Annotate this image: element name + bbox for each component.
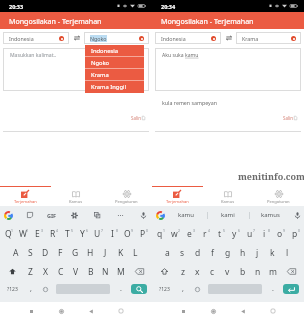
button[interactable]: X <box>38 262 53 281</box>
button[interactable]: . <box>113 281 128 297</box>
button[interactable]: Kamus <box>202 187 253 206</box>
button[interactable]: Krama Inggil <box>85 81 144 93</box>
button[interactable]: D <box>38 243 53 262</box>
button[interactable]: m <box>265 262 280 281</box>
button[interactable]: Clear <box>211 36 216 41</box>
button[interactable]: Emoji <box>38 281 53 297</box>
button[interactable]: Clear <box>139 36 144 41</box>
button[interactable]: Masukkan kalimat.. <box>3 48 149 91</box>
button[interactable]: n <box>250 262 265 281</box>
button[interactable]: J <box>98 243 113 262</box>
button[interactable]: . <box>265 281 280 297</box>
button[interactable]: S <box>23 243 38 262</box>
button[interactable]: kamus <box>249 206 291 224</box>
button[interactable]: z <box>175 262 190 281</box>
button[interactable]: y <box>227 224 242 243</box>
button[interactable]: Aku suka <box>155 48 301 91</box>
button[interactable]: V <box>68 262 83 281</box>
button[interactable]: u <box>242 224 257 243</box>
button[interactable]: U <box>90 224 105 243</box>
button[interactable]: O <box>120 224 135 243</box>
button[interactable]: Emoji <box>190 281 205 297</box>
button[interactable]: o <box>272 224 287 243</box>
button[interactable]: Indonesia <box>155 32 221 44</box>
button[interactable]: Krama <box>85 69 144 81</box>
button[interactable]: Recents <box>25 305 37 317</box>
button[interactable]: Search <box>131 284 147 294</box>
button[interactable]: Screenshot <box>115 305 127 317</box>
button[interactable]: P <box>135 224 150 243</box>
button[interactable]: Back <box>237 305 249 317</box>
button[interactable]: GIF <box>47 212 57 219</box>
button[interactable]: Translate <box>92 210 102 220</box>
button[interactable]: w <box>167 224 182 243</box>
button[interactable]: p <box>287 224 302 243</box>
button[interactable]: Clear <box>291 36 296 41</box>
button[interactable]: Ngoko <box>84 32 149 44</box>
button[interactable]: e <box>182 224 197 243</box>
button[interactable]: Pengaturan <box>101 187 152 206</box>
button[interactable]: Recents <box>177 305 189 317</box>
button[interactable]: Enter <box>283 284 299 294</box>
button[interactable]: d <box>190 243 205 262</box>
button[interactable]: Voice input <box>138 210 148 220</box>
button[interactable]: T <box>60 224 75 243</box>
button[interactable]: Home <box>207 305 219 317</box>
button[interactable]: a <box>160 243 175 262</box>
button[interactable]: t <box>212 224 227 243</box>
button[interactable]: Q <box>1 224 15 243</box>
button[interactable]: W <box>15 224 30 243</box>
button[interactable]: H <box>83 243 98 262</box>
button[interactable]: Swap languages <box>224 33 234 43</box>
button[interactable]: kamu <box>165 206 207 224</box>
button[interactable]: Voice input <box>291 206 304 224</box>
button[interactable]: C <box>53 262 68 281</box>
button[interactable]: Terjemahan <box>152 187 202 206</box>
button[interactable]: R <box>45 224 60 243</box>
button[interactable]: x <box>190 262 205 281</box>
button[interactable]: Stickers <box>25 210 35 220</box>
button[interactable]: c <box>205 262 220 281</box>
button[interactable]: Google <box>4 211 13 220</box>
button[interactable]: A <box>8 243 23 262</box>
button[interactable]: Home <box>55 305 67 317</box>
button[interactable]: Salin <box>131 115 145 121</box>
button[interactable]: ?123 <box>153 281 175 297</box>
button[interactable]: G <box>68 243 83 262</box>
button[interactable]: L <box>128 243 143 262</box>
button[interactable]: Z <box>23 262 38 281</box>
button[interactable]: M <box>113 262 128 281</box>
button[interactable]: Shift <box>1 262 23 281</box>
button[interactable]: Swap languages <box>72 33 82 43</box>
button[interactable]: k <box>265 243 280 262</box>
button[interactable]: h <box>235 243 250 262</box>
button[interactable]: i <box>257 224 272 243</box>
button[interactable]: ?123 <box>1 281 23 297</box>
button[interactable]: Google <box>156 211 165 220</box>
button[interactable]: Keyboard settings <box>69 210 79 220</box>
button[interactable]: Backspace <box>128 262 150 281</box>
button[interactable]: I <box>105 224 120 243</box>
button[interactable]: , <box>175 281 190 297</box>
button[interactable]: F <box>53 243 68 262</box>
button[interactable]: More options <box>115 210 125 220</box>
button[interactable]: b <box>235 262 250 281</box>
button[interactable]: l <box>280 243 295 262</box>
button[interactable]: s <box>175 243 190 262</box>
button[interactable]: B <box>83 262 98 281</box>
button[interactable]: r <box>197 224 212 243</box>
button[interactable]: , <box>23 281 38 297</box>
button[interactable]: Terjemahan <box>0 187 50 206</box>
button[interactable]: Kamus <box>50 187 101 206</box>
button[interactable]: Shift <box>153 262 175 281</box>
button[interactable]: Indonesia <box>3 32 69 44</box>
button[interactable]: Ngoko <box>85 57 144 69</box>
button[interactable]: K <box>113 243 128 262</box>
button[interactable]: g <box>220 243 235 262</box>
button[interactable]: Krama <box>236 32 301 44</box>
button[interactable]: v <box>220 262 235 281</box>
button[interactable]: N <box>98 262 113 281</box>
button[interactable]: Y <box>75 224 90 243</box>
